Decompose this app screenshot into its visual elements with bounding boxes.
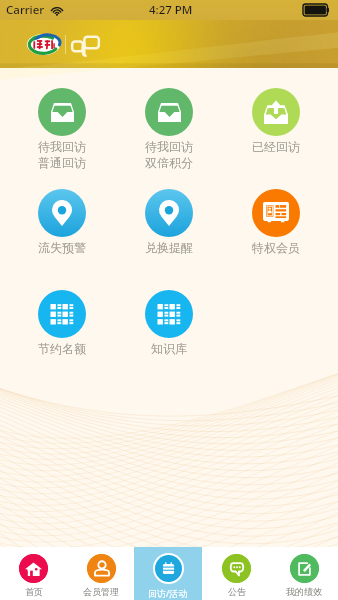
staticText: 知识库	[151, 341, 187, 356]
staticText: 公告	[228, 586, 246, 597]
button[interactable]: 首页	[0, 547, 67, 600]
staticText: 我的绩效	[286, 586, 322, 597]
staticText: 普通回访	[38, 155, 86, 170]
button[interactable]: 会员管理	[67, 547, 134, 600]
staticText: 回访/活动	[148, 587, 188, 599]
staticText: 首页	[25, 586, 43, 597]
button[interactable]: 待我回访	[38, 88, 86, 170]
staticText: 兑换提醒	[145, 240, 193, 255]
staticText: 待我回访	[38, 139, 86, 154]
button[interactable]: 已经回访	[252, 88, 300, 154]
staticText: Carrier	[6, 2, 45, 18]
button[interactable]: 我的绩效	[270, 547, 338, 600]
button[interactable]: 流失预警	[38, 189, 86, 255]
staticText: 双倍积分	[145, 155, 193, 170]
staticText: 特权会员	[252, 240, 300, 255]
button[interactable]: 知识库	[145, 290, 193, 356]
staticText: 4:27 PM	[149, 2, 193, 18]
button[interactable]: 待我回访	[145, 88, 193, 170]
staticText: 会员管理	[83, 586, 119, 597]
button[interactable]: 回访/活动	[134, 547, 202, 600]
staticText: 流失预警	[38, 240, 86, 255]
button[interactable]: 特权会员	[252, 189, 300, 255]
button[interactable]: 节约名额	[38, 290, 86, 356]
button[interactable]: 公告	[202, 547, 270, 600]
staticText: 节约名额	[38, 341, 86, 356]
staticText: 已经回访	[252, 139, 300, 154]
button[interactable]: 兑换提醒	[145, 189, 193, 255]
staticText: 待我回访	[145, 139, 193, 154]
